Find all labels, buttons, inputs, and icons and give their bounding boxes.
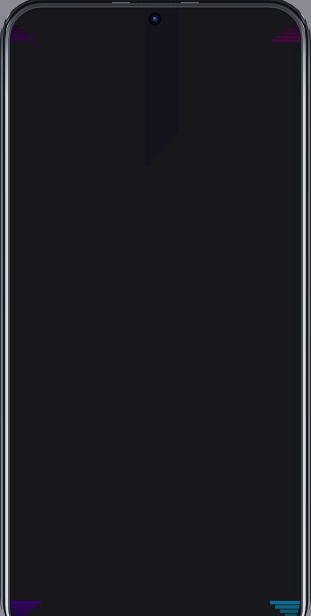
button[interactable]: Home screen (0, 0, 311, 616)
